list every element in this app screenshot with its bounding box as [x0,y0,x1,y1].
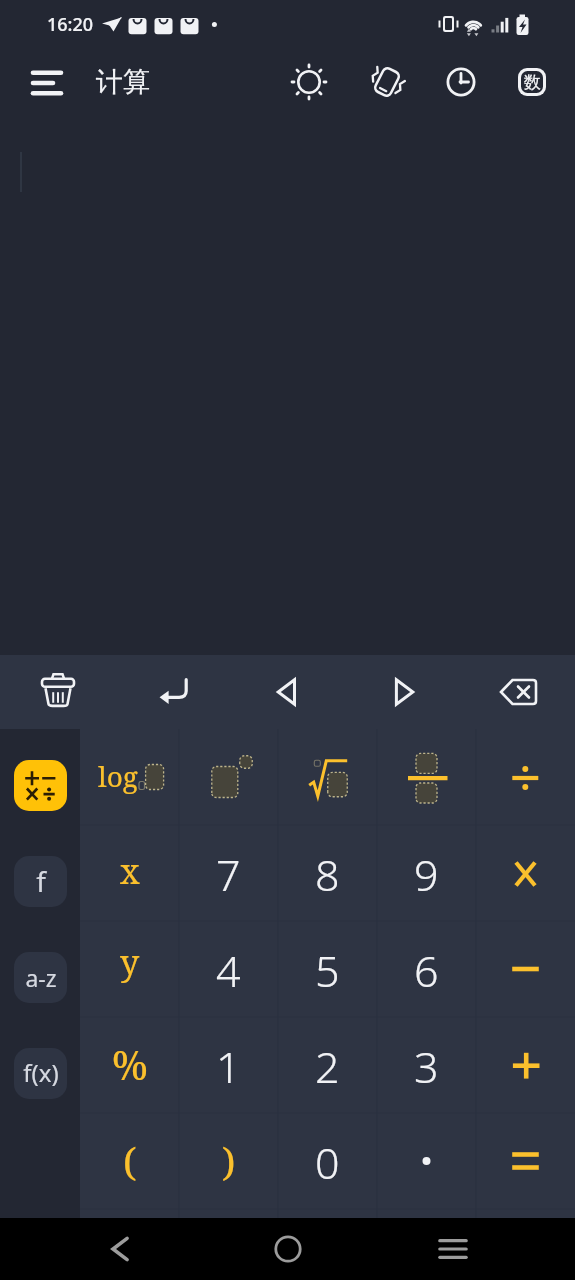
button[interactable]: ) [179,1113,278,1209]
staticText: 计算 [96,65,150,99]
button[interactable]: Recent apps [423,1220,483,1278]
button[interactable]: 9 [377,825,476,921]
button[interactable]: Backspace [460,655,575,729]
button[interactable]: Back [91,1220,151,1278]
button[interactable]: dot [377,1113,476,1209]
staticText: f [36,862,46,900]
button[interactable]: sqrt [278,729,377,825]
button[interactable]: Number base [499,49,565,115]
staticText: 8 [315,845,340,904]
button[interactable]: Clear [0,655,115,729]
button[interactable]: 5 [278,921,377,1017]
staticText: % [112,1037,148,1091]
button[interactable]: 8 [278,825,377,921]
staticText: 4 [216,941,241,1000]
button[interactable]: div [476,729,575,825]
button[interactable]: mul [476,825,575,921]
button[interactable]: 3 [377,1017,476,1113]
staticText: 16:20 [47,12,94,37]
staticText: 6 [414,941,439,1000]
button[interactable]: Home [258,1220,318,1278]
button[interactable]: f(x) [14,1048,67,1099]
button[interactable]: a-z [14,952,67,1003]
button[interactable]: Menu [13,49,81,117]
staticText: x [120,848,140,894]
button[interactable]: Move left [230,655,345,729]
button[interactable]: 7 [179,825,278,921]
button[interactable]: 6 [377,921,476,1017]
staticText: log [98,757,138,795]
button[interactable]: ( [80,1113,179,1209]
staticText: ( [123,1134,137,1187]
button[interactable]: 1 [179,1017,278,1113]
button[interactable]: 2 [278,1017,377,1113]
button[interactable]: Brightness [276,49,342,115]
button[interactable]: sub [476,921,575,1017]
button[interactable]: Basic operators [14,760,67,811]
button[interactable]: 4 [179,921,278,1017]
button[interactable]: add [476,1017,575,1113]
button[interactable]: History [428,49,494,115]
button[interactable]: eq [476,1113,575,1209]
button[interactable]: Shake to clear [354,49,420,115]
button[interactable]: log [80,729,179,825]
button[interactable]: pow [179,729,278,825]
staticText: y [120,939,140,985]
button[interactable]: y [80,921,179,1017]
staticText: 7 [216,845,241,904]
staticText: 2 [315,1037,340,1096]
staticText: 3 [414,1037,439,1096]
staticText: 0 [315,1133,340,1192]
staticText: 9 [414,845,439,904]
button[interactable]: % [80,1017,179,1113]
button[interactable]: Enter [115,655,230,729]
staticText: 数 [524,72,541,93]
button[interactable]: 0 [278,1113,377,1209]
staticText: ) [222,1134,236,1187]
button[interactable]: x [80,825,179,921]
staticText: a-z [25,962,57,993]
staticText: f(x) [23,1056,59,1089]
button[interactable]: f [14,856,67,907]
button[interactable]: Move right [345,655,460,729]
button[interactable]: frac [377,729,476,825]
staticText: 1 [216,1037,241,1096]
staticText: 5 [315,941,340,1000]
